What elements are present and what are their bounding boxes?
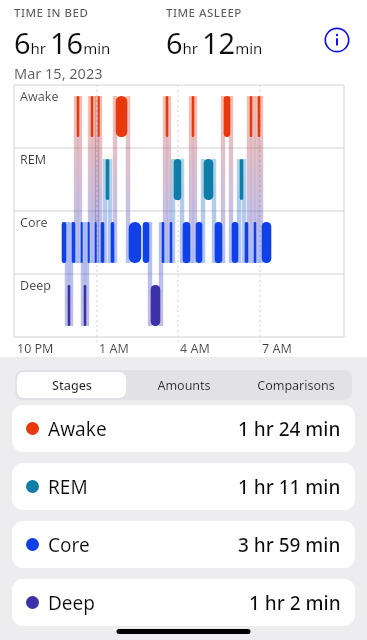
staticText: REM bbox=[48, 474, 88, 500]
button[interactable]: Core bbox=[12, 521, 355, 568]
staticText: Awake bbox=[20, 88, 59, 105]
staticText: 4 AM bbox=[180, 340, 210, 357]
staticText: Amounts bbox=[157, 377, 211, 394]
staticText: Stages bbox=[52, 377, 92, 394]
staticText: REM bbox=[20, 151, 47, 168]
staticText: TIME ASLEEP bbox=[166, 5, 242, 21]
staticText: 6hr 16min bbox=[14, 23, 111, 62]
staticText: 10 PM bbox=[17, 340, 54, 357]
button[interactable]: Stages bbox=[17, 372, 126, 398]
staticText: 1 hr 2 min bbox=[249, 590, 341, 616]
staticText: 3 hr 59 min bbox=[238, 532, 341, 558]
staticText: Mar 15, 2023 bbox=[14, 63, 103, 83]
staticText: 1 hr 24 min bbox=[238, 416, 341, 442]
staticText: Awake bbox=[48, 416, 107, 442]
staticText: Deep bbox=[20, 277, 51, 294]
button[interactable]: Information bbox=[324, 27, 350, 53]
button[interactable]: Comparisons bbox=[242, 372, 350, 398]
staticText: 6hr 12min bbox=[166, 23, 263, 62]
button[interactable]: Deep bbox=[12, 579, 355, 626]
button[interactable]: Amounts bbox=[130, 372, 238, 398]
staticText: 1 AM bbox=[99, 340, 129, 357]
staticText: 7 AM bbox=[262, 340, 292, 357]
staticText: Core bbox=[20, 214, 48, 231]
button[interactable]: Awake bbox=[12, 405, 355, 452]
staticText: TIME IN BED bbox=[14, 5, 89, 21]
staticText: Comparisons bbox=[257, 377, 335, 394]
staticText: 1 hr 11 min bbox=[238, 474, 341, 500]
button[interactable]: REM bbox=[12, 463, 355, 510]
staticText: Core bbox=[48, 532, 90, 558]
staticText: Deep bbox=[48, 590, 95, 616]
